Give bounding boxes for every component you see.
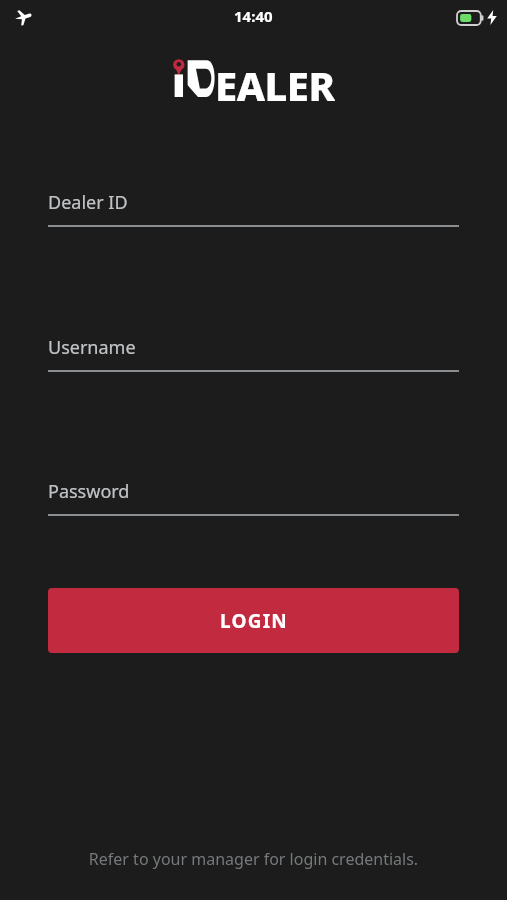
staticText: Dealer ID xyxy=(48,190,128,215)
button[interactable]: Username xyxy=(48,335,459,372)
staticText: Password xyxy=(48,479,130,504)
staticText: Refer to your manager for login credenti… xyxy=(24,848,483,870)
button[interactable]: Password xyxy=(48,479,459,516)
staticText: EALER xyxy=(215,58,335,110)
staticText: Username xyxy=(48,335,136,360)
button[interactable]: Dealer ID xyxy=(48,190,459,227)
staticText: LOGIN xyxy=(220,608,288,634)
button[interactable]: LOGIN xyxy=(48,588,459,653)
staticText: 14:40 xyxy=(234,6,273,26)
